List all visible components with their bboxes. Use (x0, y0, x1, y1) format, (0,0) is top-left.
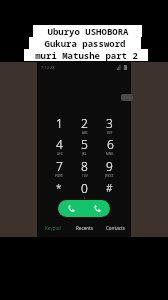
button[interactable]: 8 (72, 157, 97, 178)
staticText: PQRS (55, 174, 63, 178)
staticText: 7:12:28 (41, 65, 55, 70)
staticText: TUV (82, 174, 88, 178)
staticText: JKL (82, 152, 87, 156)
button[interactable]: # (97, 179, 122, 200)
staticText: 9 (106, 158, 113, 174)
staticText: Keypad (45, 225, 61, 231)
button[interactable]: Keypad (37, 222, 69, 234)
staticText: MNO (106, 152, 114, 156)
staticText: Uburyo USHOBORA (47, 25, 129, 37)
staticText: DEF (107, 131, 113, 135)
button[interactable]: Recents (69, 222, 100, 234)
button[interactable]: 5 (72, 136, 97, 156)
staticText: Gukura password (44, 37, 126, 49)
staticText: 5 (81, 136, 88, 152)
button[interactable]: * (46, 179, 72, 200)
staticText: 3 (106, 115, 113, 131)
staticText: # (106, 181, 113, 195)
button[interactable]: 0 (72, 179, 97, 200)
staticText: 4 (56, 136, 63, 152)
button[interactable]: Call with SIM 1 (58, 200, 84, 217)
staticText: WXYZ (105, 174, 114, 178)
staticText: 0 (81, 180, 88, 196)
staticText: * (56, 181, 62, 195)
staticText: 7 (56, 158, 63, 174)
staticText: 8 (81, 158, 88, 174)
button[interactable]: 4 (46, 136, 72, 156)
staticText: ABC (82, 131, 88, 135)
button[interactable]: Contacts (100, 222, 131, 234)
button[interactable]: 1 (46, 115, 72, 135)
button[interactable]: 7 (46, 157, 72, 178)
staticText: + (84, 196, 86, 200)
button[interactable]: 2 (72, 115, 97, 135)
staticText: muri Matushe part 2 (35, 49, 138, 61)
staticText: 1 (56, 115, 63, 131)
button[interactable]: 9 (97, 157, 122, 178)
staticText: 6 (107, 136, 114, 152)
staticText: GHI (57, 152, 63, 156)
button[interactable]: 3 (97, 115, 122, 135)
button[interactable]: Call with SIM 2 (84, 200, 110, 217)
staticText: Recents (76, 225, 93, 231)
button[interactable]: 6 (97, 136, 122, 156)
staticText: Contacts (106, 225, 125, 231)
staticText: 2 (81, 115, 88, 131)
